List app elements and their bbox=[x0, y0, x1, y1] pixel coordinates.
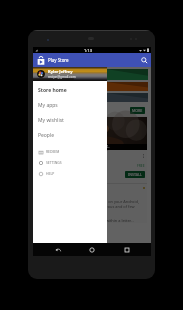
staticText: HELP bbox=[46, 171, 55, 176]
staticText: Play Store bbox=[48, 57, 69, 63]
staticText: A way to capture and share moments on yo… bbox=[39, 199, 145, 214]
staticText: INSTALL bbox=[128, 172, 142, 177]
button[interactable]: SETTINGS bbox=[33, 157, 107, 168]
staticText: 1:13 bbox=[84, 48, 92, 53]
staticText: People bbox=[38, 132, 55, 139]
staticText: My wishlist bbox=[38, 117, 64, 124]
button[interactable]: More options bbox=[140, 153, 146, 159]
staticText: recipe@gmail.com bbox=[48, 75, 76, 79]
button[interactable]: Recent apps bbox=[117, 243, 137, 256]
staticText: Deadman's Cross bbox=[41, 153, 77, 159]
staticText: The Tools · Instgram is... and a place w… bbox=[39, 218, 134, 223]
staticText: MUSIC bbox=[39, 84, 51, 89]
button[interactable]: REDEEM bbox=[33, 146, 107, 157]
staticText: SETTINGS bbox=[46, 160, 62, 165]
staticText: Store home bbox=[38, 87, 67, 94]
staticText: REDEEM bbox=[46, 149, 60, 154]
button[interactable]: My wishlist bbox=[33, 113, 107, 128]
staticText: Kyler Jeffrey bbox=[48, 69, 73, 74]
button[interactable]: INSTALL bbox=[125, 171, 145, 178]
button[interactable]: Home bbox=[82, 243, 102, 256]
button[interactable]: People bbox=[33, 128, 107, 143]
button[interactable]: Open navigation drawer bbox=[37, 56, 45, 65]
staticText: My apps bbox=[38, 102, 58, 109]
button[interactable]: Profile picture bbox=[37, 70, 45, 78]
button[interactable]: MORE bbox=[130, 107, 145, 114]
button[interactable]: Back bbox=[48, 243, 68, 256]
staticText: MORE bbox=[132, 108, 143, 113]
button[interactable]: HELP bbox=[33, 168, 107, 179]
button[interactable]: Store home bbox=[33, 83, 107, 98]
button[interactable]: My apps bbox=[33, 98, 107, 113]
staticText: FREE bbox=[137, 163, 145, 168]
button[interactable]: Search bbox=[139, 55, 150, 66]
staticText: SQUARE ENIX. bbox=[78, 144, 110, 150]
staticText: GAMES bbox=[39, 72, 52, 77]
